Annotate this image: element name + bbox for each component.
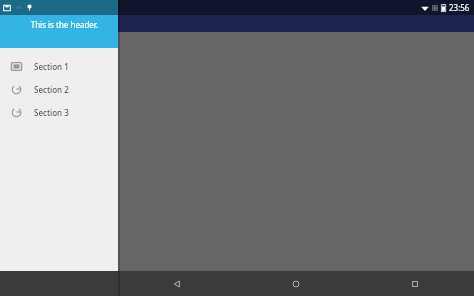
button[interactable]: Section 3 [0, 101, 118, 124]
staticText: Section 1 [34, 61, 69, 72]
staticText: Section 3 [34, 107, 69, 118]
staticText: This is the header. [30, 19, 98, 30]
button[interactable]: Section 1 [0, 55, 118, 78]
staticText: 23:56 [449, 2, 470, 13]
button[interactable]: Home [236, 271, 355, 296]
button[interactable]: Recent apps [355, 271, 474, 296]
button[interactable]: Back [118, 271, 236, 296]
staticText: Section 2 [34, 84, 69, 95]
button[interactable]: This is the header. [0, 0, 118, 48]
button[interactable]: Section 2 [0, 78, 118, 101]
